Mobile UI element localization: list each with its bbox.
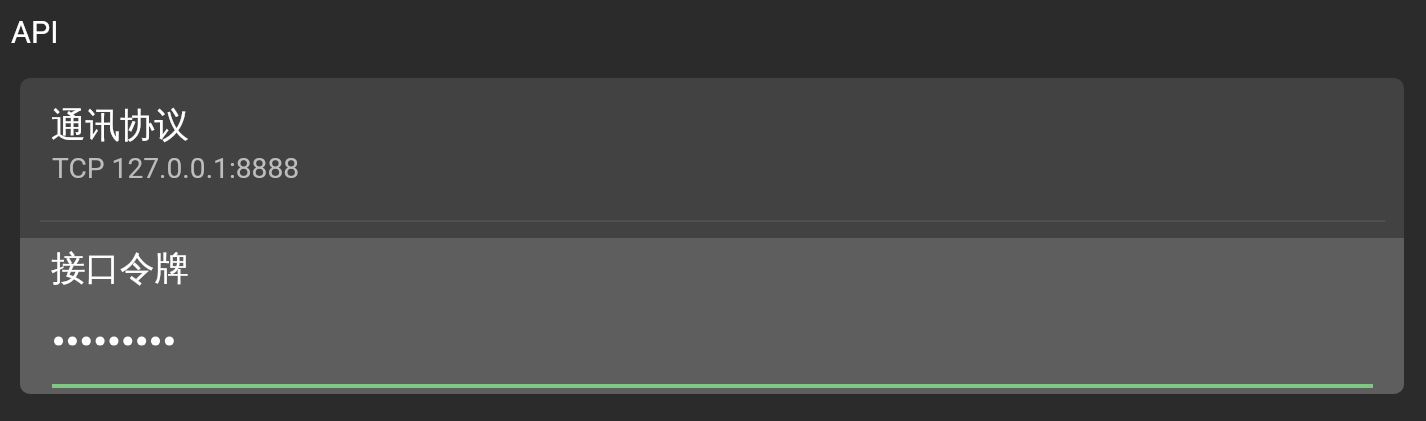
staticText: API bbox=[11, 15, 59, 51]
staticText: TCP 127.0.0.1:8888 bbox=[52, 152, 300, 185]
staticText: 接口令牌 bbox=[51, 247, 189, 290]
button[interactable]: 接口令牌 bbox=[20, 238, 1404, 394]
button[interactable]: 通讯协议 bbox=[20, 78, 1404, 238]
staticText: 通讯协议 bbox=[51, 104, 189, 147]
